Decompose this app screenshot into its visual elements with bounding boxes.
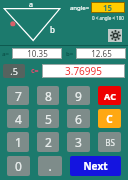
staticText: . xyxy=(48,158,52,174)
staticText: angle= xyxy=(70,4,90,12)
staticText: 7 xyxy=(15,88,22,104)
button[interactable]: 4 xyxy=(7,109,29,128)
button[interactable]: C xyxy=(98,109,121,128)
staticText: a= xyxy=(2,50,10,58)
staticText: 15 xyxy=(103,2,113,13)
staticText: 3 xyxy=(75,134,82,150)
button[interactable]: 3.76995 xyxy=(42,64,125,78)
button[interactable]: 5 xyxy=(37,109,59,128)
staticText: .5 xyxy=(10,65,18,77)
button[interactable]: 6 xyxy=(67,109,90,128)
button[interactable]: . xyxy=(38,156,62,176)
staticText: 0 xyxy=(15,158,22,174)
button[interactable]: 0 xyxy=(7,156,30,176)
staticText: 3.76995 xyxy=(65,64,102,78)
button[interactable]: Settings xyxy=(108,29,122,42)
button[interactable]: b= xyxy=(66,48,126,59)
staticText: 5 xyxy=(45,111,52,127)
staticText: 9 xyxy=(75,88,82,104)
button[interactable]: 8 xyxy=(37,86,59,105)
button[interactable]: AC xyxy=(98,86,121,105)
staticText: BS xyxy=(105,137,115,148)
staticText: b xyxy=(50,24,55,35)
button[interactable]: 3 xyxy=(67,132,90,152)
staticText: C xyxy=(106,112,113,126)
button[interactable]: BS xyxy=(98,132,121,152)
staticText: b= xyxy=(66,50,74,58)
staticText: 8 xyxy=(45,88,52,104)
staticText: c= xyxy=(31,66,39,76)
button[interactable]: 9 xyxy=(67,86,90,105)
staticText: 12.65 xyxy=(91,48,112,59)
staticText: AC xyxy=(104,90,116,102)
button[interactable]: 2 xyxy=(37,132,59,152)
button[interactable]: 1 xyxy=(7,132,29,152)
staticText: Next xyxy=(83,159,108,173)
staticText: 2 xyxy=(45,134,52,150)
button[interactable]: 15 xyxy=(91,2,125,13)
button[interactable]: Next xyxy=(70,156,121,176)
button[interactable]: 7 xyxy=(7,86,29,105)
button[interactable]: .5 xyxy=(3,64,25,78)
staticText: a xyxy=(29,0,33,10)
staticText: 1 xyxy=(15,134,22,150)
staticText: 4 xyxy=(15,111,22,127)
button[interactable]: a= xyxy=(2,48,62,59)
staticText: 0 < angle < 180 xyxy=(92,15,124,21)
staticText: 10.35 xyxy=(27,48,48,59)
staticText: 6 xyxy=(75,111,82,127)
